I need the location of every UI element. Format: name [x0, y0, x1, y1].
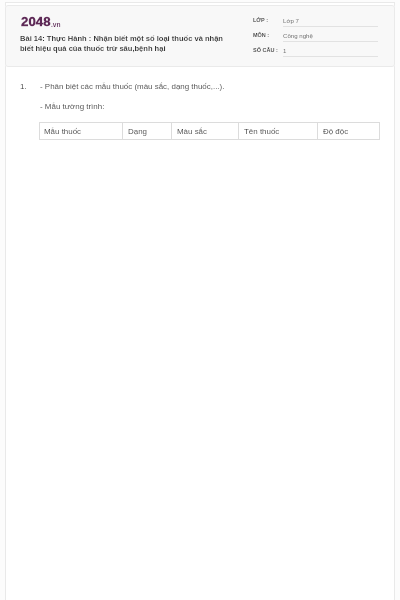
- staticText: - Phân biệt các mẫu thuốc (màu sắc, dạng…: [40, 82, 225, 91]
- staticText: Độ độc: [323, 127, 349, 136]
- staticText: LỚP :: [253, 17, 268, 23]
- button[interactable]: Bài 14: Thực Hành : Nhận biết một số loạ…: [20, 34, 228, 53]
- button[interactable]: Độ độc: [318, 122, 379, 140]
- staticText: Mẫu thuốc: [44, 127, 82, 136]
- button[interactable]: Tên thuốc: [239, 122, 317, 140]
- staticText: Tên thuốc: [244, 127, 280, 136]
- staticText: Công nghệ: [283, 32, 313, 39]
- staticText: .vn: [51, 21, 61, 28]
- button[interactable]: Dạng: [123, 122, 171, 140]
- staticText: MÔN :: [253, 32, 270, 38]
- staticText: Màu sắc: [177, 127, 207, 136]
- staticText: - Mẫu tường trình:: [40, 102, 105, 111]
- button[interactable]: Mẫu thuốc: [39, 122, 122, 140]
- staticText: 1: [283, 47, 287, 54]
- staticText: SỐ CÂU :: [253, 47, 278, 53]
- button[interactable]: Màu sắc: [172, 122, 238, 140]
- staticText: 1.: [20, 82, 27, 91]
- staticText: Lớp 7: [283, 17, 299, 24]
- button[interactable]: 2048: [21, 14, 61, 29]
- staticText: Dạng: [128, 127, 147, 136]
- staticText: 2048: [21, 14, 51, 29]
